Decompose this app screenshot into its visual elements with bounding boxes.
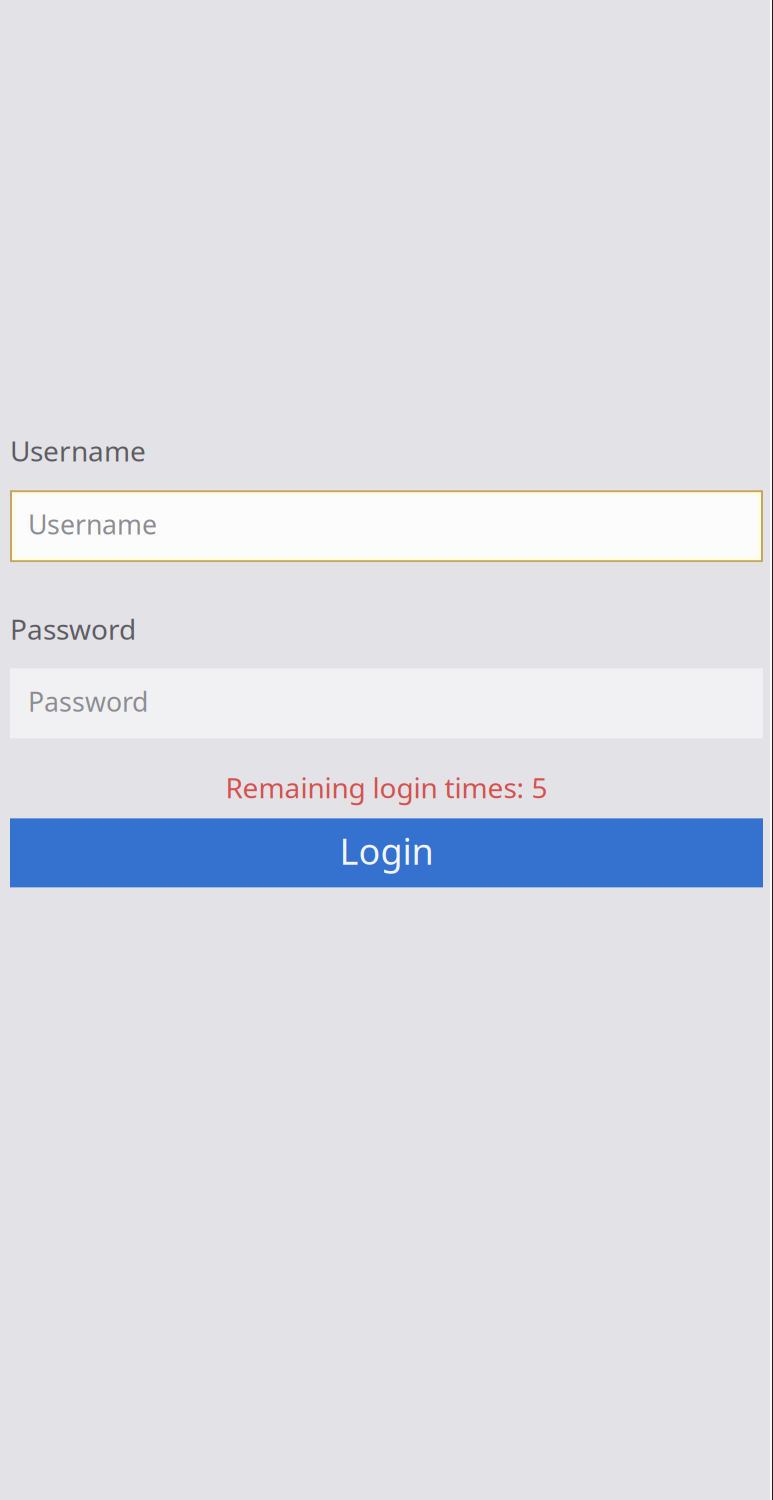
button[interactable]: Password (10, 668, 763, 738)
staticText: Password (10, 610, 136, 647)
staticText: Remaining login times: 5 (225, 769, 547, 806)
staticText: Password (28, 684, 148, 719)
staticText: Username (28, 506, 157, 542)
button[interactable]: Username (10, 490, 763, 562)
staticText: Username (10, 432, 146, 469)
button[interactable]: Login (10, 818, 763, 887)
staticText: Login (339, 827, 433, 875)
